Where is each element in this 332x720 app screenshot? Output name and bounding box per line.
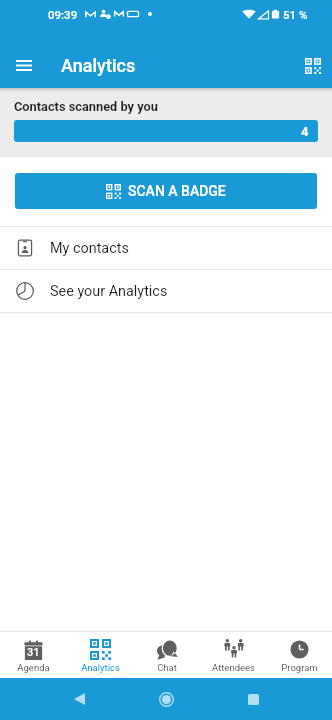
button[interactable]: Program bbox=[266, 632, 332, 678]
button[interactable]: SCAN A BADGE bbox=[15, 173, 317, 209]
button[interactable]: Home bbox=[152, 685, 180, 713]
staticText: Program bbox=[281, 662, 318, 673]
staticText: 09:39 bbox=[48, 8, 78, 21]
button[interactable]: Analytics bbox=[67, 632, 134, 678]
staticText: See your Analytics bbox=[50, 283, 168, 300]
staticText: SCAN A BADGE bbox=[128, 183, 226, 199]
staticText: Analytics bbox=[81, 662, 120, 673]
staticText: Agenda bbox=[17, 662, 50, 673]
button[interactable]: Attendees bbox=[200, 632, 266, 678]
staticText: Contacts scanned by you bbox=[14, 99, 158, 114]
staticText: 51 % bbox=[283, 8, 308, 21]
staticText: Analytics bbox=[61, 55, 136, 76]
button[interactable]: Menu bbox=[8, 49, 40, 81]
button[interactable]: Scan QR code bbox=[299, 52, 327, 80]
button[interactable]: My contacts bbox=[0, 227, 332, 269]
button[interactable]: Back bbox=[65, 685, 93, 713]
button[interactable]: See your Analytics bbox=[0, 270, 332, 312]
button[interactable]: Chat bbox=[134, 632, 200, 678]
button[interactable]: Recents bbox=[239, 685, 267, 713]
button[interactable]: 31 bbox=[0, 632, 67, 678]
staticText: Chat bbox=[157, 662, 177, 673]
staticText: 31 bbox=[27, 646, 40, 659]
staticText: My contacts bbox=[50, 240, 129, 257]
staticText: 4 bbox=[301, 124, 309, 139]
staticText: Attendees bbox=[212, 662, 255, 673]
